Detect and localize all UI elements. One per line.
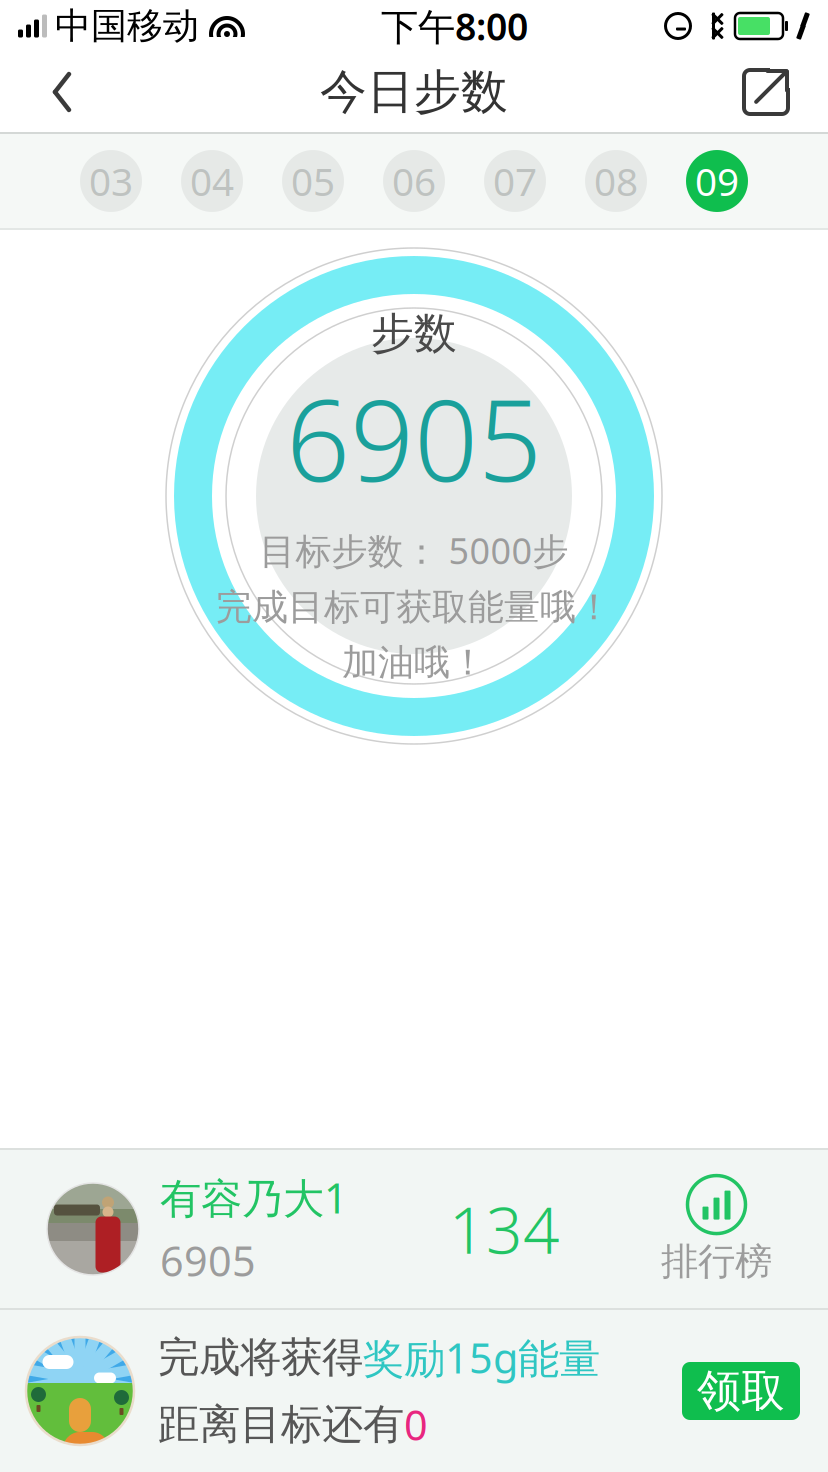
button[interactable]: 分享 bbox=[718, 52, 814, 132]
button[interactable]: 05 bbox=[262, 132, 363, 230]
button[interactable]: 03 bbox=[60, 132, 161, 230]
staticText: 有容乃大1 bbox=[160, 1170, 348, 1225]
button[interactable]: 08 bbox=[565, 132, 666, 230]
staticText: 奖励15g能量 bbox=[363, 1330, 600, 1385]
staticText: 下午8:00 bbox=[381, 1, 528, 51]
staticText: 04 bbox=[190, 155, 234, 207]
button[interactable]: 有容乃大1 bbox=[0, 1150, 828, 1308]
staticText: 完成目标可获取能量哦！ bbox=[216, 585, 612, 629]
button[interactable]: 09 bbox=[666, 132, 767, 230]
staticText: 07 bbox=[493, 155, 537, 207]
staticText: 6905 bbox=[286, 364, 542, 512]
staticText: 0 bbox=[404, 1397, 428, 1452]
button[interactable]: 07 bbox=[464, 132, 565, 230]
staticText: 领取 bbox=[697, 1364, 785, 1418]
staticText: 06 bbox=[392, 155, 436, 207]
staticText: 08 bbox=[594, 155, 638, 207]
staticText: 09 bbox=[695, 155, 739, 207]
staticText: 中国移动 bbox=[55, 4, 199, 48]
staticText: 完成将获得 bbox=[158, 1332, 363, 1383]
button[interactable]: 06 bbox=[363, 132, 464, 230]
staticText: 排行榜 bbox=[661, 1239, 772, 1284]
staticText: 加油哦！ bbox=[342, 640, 486, 685]
staticText: 03 bbox=[89, 155, 133, 207]
staticText: 134 bbox=[449, 1186, 560, 1271]
button[interactable]: 04 bbox=[161, 132, 262, 230]
staticText: 05 bbox=[291, 155, 335, 207]
staticText: 目标步数： 5000步 bbox=[259, 526, 568, 574]
staticText: 6905 bbox=[160, 1233, 256, 1288]
staticText: 步数 bbox=[371, 307, 457, 360]
staticText: 距离目标还有 bbox=[158, 1399, 404, 1450]
button[interactable]: 领取 bbox=[682, 1362, 800, 1420]
staticText: 今日步数 bbox=[320, 63, 508, 121]
button[interactable]: 返回 bbox=[14, 52, 110, 132]
